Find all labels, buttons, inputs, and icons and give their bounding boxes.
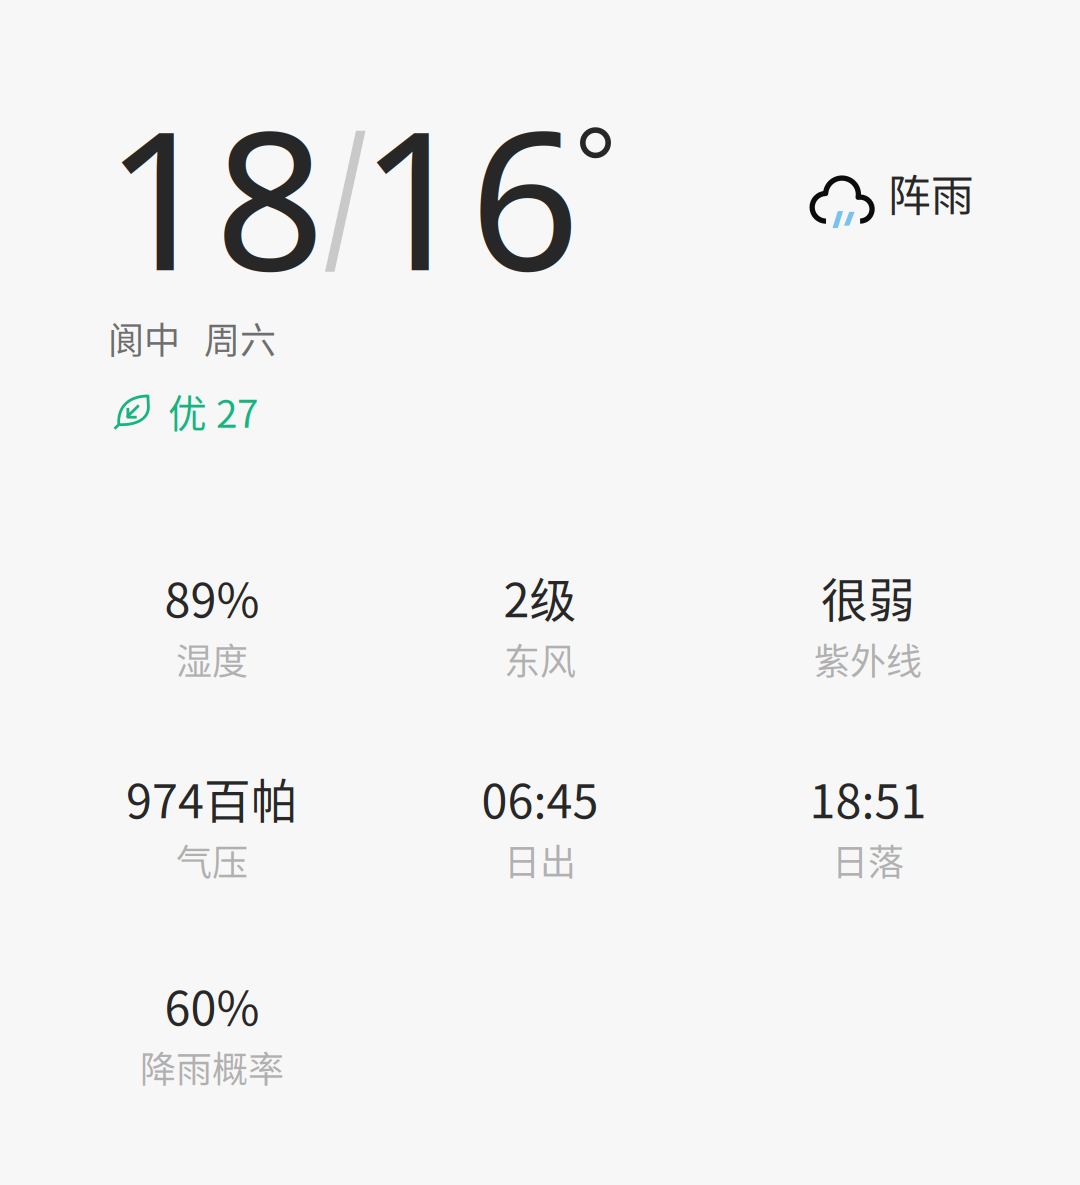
button[interactable]: 18:51 xyxy=(704,783,1032,903)
staticText: 阵雨 xyxy=(888,162,974,224)
staticText: 06:45 xyxy=(481,764,598,832)
staticText: 16 xyxy=(360,65,580,326)
button[interactable]: 阆中 周六 xyxy=(108,312,276,364)
staticText: 优 27 xyxy=(168,383,258,439)
staticText: 气压 xyxy=(176,834,248,886)
staticText: 日出 xyxy=(504,834,576,886)
staticText: 974百帕 xyxy=(126,764,298,832)
button[interactable]: 阵雨 xyxy=(804,169,971,231)
button[interactable]: 974百帕 xyxy=(48,783,376,903)
staticText: 18:51 xyxy=(809,764,926,832)
staticText: 日落 xyxy=(832,834,904,886)
button[interactable]: 60% xyxy=(48,990,376,1110)
button[interactable]: 很弱 xyxy=(704,582,1032,702)
staticText: 2级 xyxy=(503,563,576,631)
staticText: 89% xyxy=(164,563,259,631)
button[interactable]: 高温 18 度，低温 16 度 xyxy=(105,65,617,326)
button[interactable]: 89% xyxy=(48,582,376,702)
button[interactable]: 2级 xyxy=(376,582,704,702)
staticText: 东风 xyxy=(504,633,576,685)
button[interactable]: 06:45 xyxy=(376,783,704,903)
staticText: 阆中 周六 xyxy=(108,312,276,364)
staticText: 很弱 xyxy=(821,563,915,631)
staticText: 18 xyxy=(105,65,325,326)
staticText: 湿度 xyxy=(176,633,248,685)
staticText: 60% xyxy=(164,971,259,1039)
button[interactable]: 优 27 xyxy=(113,394,258,450)
staticText: 紫外线 xyxy=(814,633,922,685)
staticText: 降雨概率 xyxy=(140,1041,284,1093)
